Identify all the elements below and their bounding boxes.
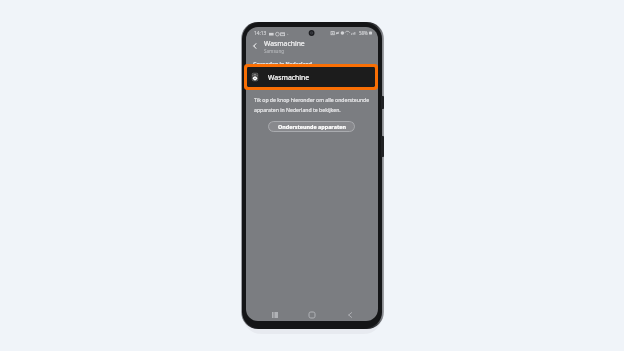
staticText: Wasmachine <box>264 39 305 48</box>
button[interactable]: Back <box>342 307 358 321</box>
button[interactable]: Recent apps <box>267 307 283 321</box>
staticText: Samsung <box>264 48 285 54</box>
staticText: Wasmachine <box>268 73 310 82</box>
button[interactable]: Back <box>249 40 261 52</box>
button[interactable]: Wasmachine <box>247 67 375 87</box>
staticText: Ondersteunde apparaten <box>278 123 346 130</box>
staticText: 58% <box>359 30 368 36</box>
button[interactable]: Home <box>304 307 320 321</box>
staticText: 14:13 <box>254 30 267 37</box>
staticText: Tik op de knop hieronder om alle onderst… <box>254 96 375 113</box>
staticText: Gevonden in Nederland <box>253 61 312 68</box>
button[interactable]: Ondersteunde apparaten <box>268 121 355 132</box>
